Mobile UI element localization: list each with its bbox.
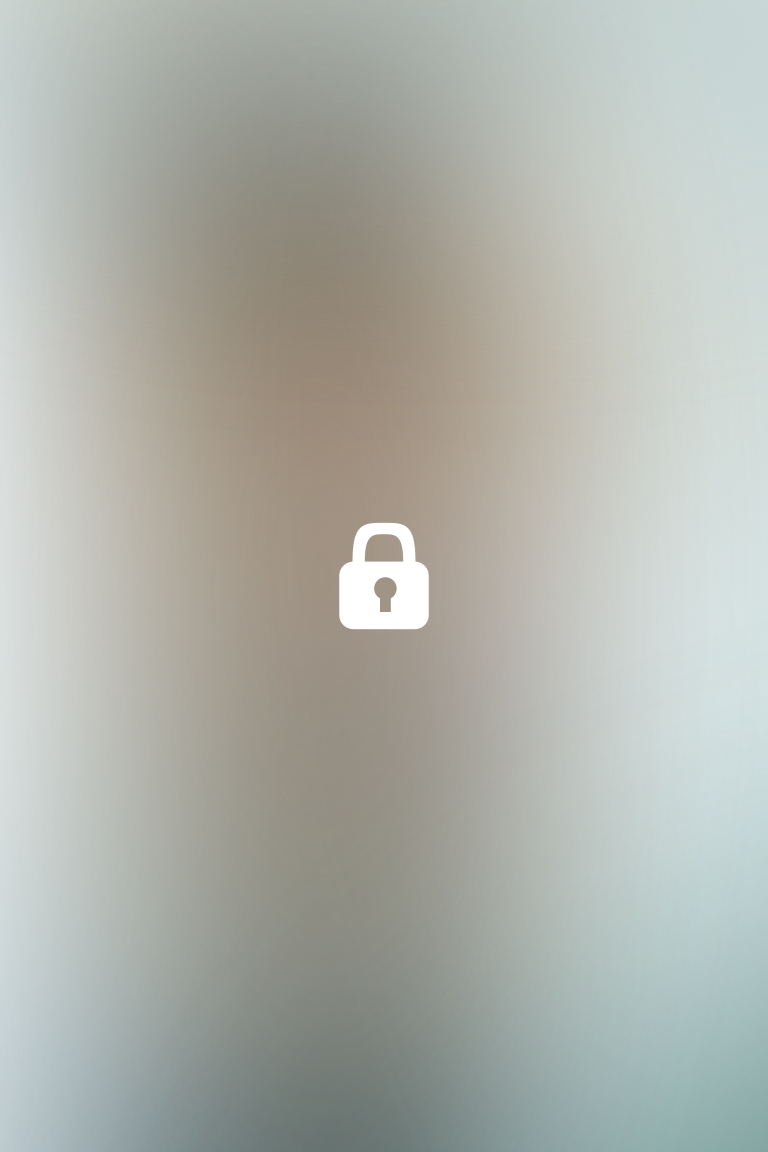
button[interactable]: Unlock: [0, 0, 768, 1152]
